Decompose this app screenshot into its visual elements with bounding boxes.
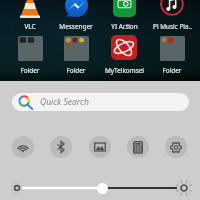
button[interactable]: Messenger [65, 0, 88, 17]
staticText: Pi Music Pla.. [153, 22, 192, 31]
button[interactable]: Folder [160, 36, 185, 61]
button[interactable]: Minimum brightness [11, 182, 23, 194]
button[interactable]: Pi Music Player [160, 0, 184, 16]
button[interactable]: Brightness level [97, 183, 108, 194]
staticText: Folder [66, 66, 86, 75]
button[interactable]: Folder [64, 36, 89, 61]
staticText: Quick Search [40, 96, 89, 108]
staticText: Folder [20, 66, 40, 75]
staticText: VLC [24, 22, 36, 31]
staticText: Messenger [59, 22, 93, 31]
button[interactable]: YI Action [113, 0, 136, 17]
button[interactable]: VLC [19, 0, 41, 18]
button[interactable]: MyTelkomsel [111, 35, 137, 60]
button[interactable]: Maximum brightness [176, 180, 192, 196]
button[interactable]: Screenshot [89, 136, 111, 158]
button[interactable]: Bluetooth [50, 136, 72, 158]
button[interactable]: Wi-Fi [12, 136, 34, 158]
button[interactable]: Folder [18, 36, 43, 61]
staticText: MyTelkomsel [105, 66, 144, 75]
button[interactable]: Settings [165, 136, 187, 158]
staticText: YI Action [111, 22, 138, 31]
staticText: Folder [162, 66, 182, 75]
button[interactable]: Quick Search [12, 93, 189, 111]
button[interactable]: Calculator [127, 136, 149, 158]
